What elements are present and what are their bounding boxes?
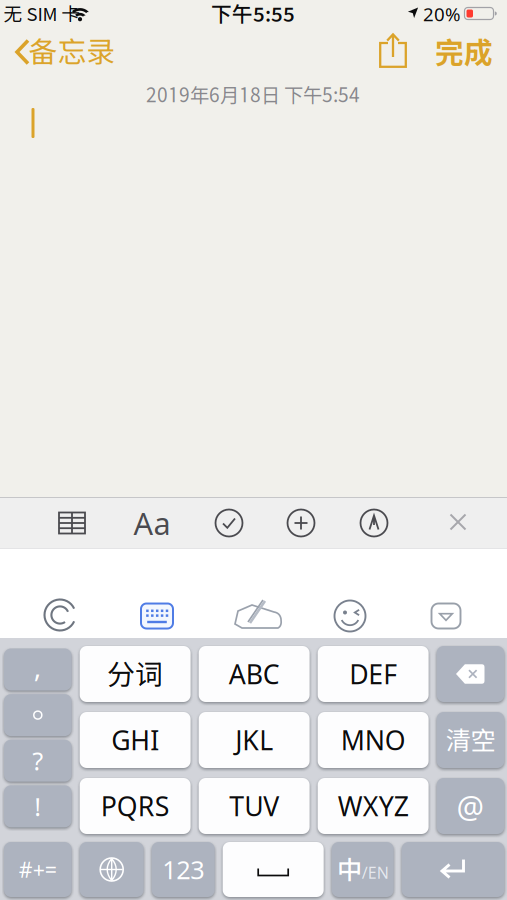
- button[interactable]: GHI: [80, 712, 191, 768]
- staticText: ,: [34, 648, 42, 685]
- button[interactable]: JKL: [199, 712, 310, 768]
- staticText: #+=: [19, 855, 57, 884]
- button[interactable]: 123: [152, 842, 215, 897]
- button[interactable]: 共享: [378, 33, 408, 69]
- button[interactable]: TUV: [199, 778, 310, 834]
- staticText: 123: [162, 853, 204, 886]
- button[interactable]: 表格: [58, 511, 86, 535]
- staticText: @: [456, 786, 484, 826]
- staticText: 20%: [423, 2, 461, 26]
- staticText: JKL: [235, 722, 273, 758]
- button[interactable]: 输入法菜单: [43, 598, 77, 632]
- button[interactable]: 键盘: [140, 602, 174, 629]
- staticText: WXYZ: [338, 788, 409, 824]
- button[interactable]: MNO: [318, 712, 429, 768]
- staticText: 分词: [107, 657, 163, 690]
- staticText: PQRS: [101, 788, 170, 824]
- staticText: ABC: [229, 656, 280, 692]
- button[interactable]: #+=: [4, 842, 72, 897]
- button[interactable]: PQRS: [80, 778, 191, 834]
- button[interactable]: 表情: [334, 600, 366, 632]
- staticText: MNO: [341, 722, 406, 758]
- button[interactable]: 添加: [287, 509, 315, 537]
- staticText: 清空: [445, 725, 495, 755]
- staticText: TUV: [229, 788, 279, 824]
- button[interactable]: ，: [4, 648, 72, 690]
- button[interactable]: 下一个键盘: [80, 842, 144, 897]
- button[interactable]: DEF: [318, 646, 429, 702]
- button[interactable]: 空格: [223, 842, 324, 897]
- staticText: GHI: [111, 722, 159, 758]
- staticText: DEF: [349, 656, 397, 692]
- button[interactable]: ？: [4, 740, 72, 782]
- button[interactable]: 删除: [437, 646, 504, 702]
- button[interactable]: WXYZ: [318, 778, 429, 834]
- staticText: 2019年6月18日 下午5:54: [146, 84, 360, 106]
- button[interactable]: 备忘录: [14, 39, 108, 65]
- staticText: 备忘录: [28, 35, 115, 68]
- button[interactable]: ABC: [199, 646, 310, 702]
- button[interactable]: ！: [4, 785, 72, 827]
- staticText: 完成: [435, 35, 493, 69]
- staticText: Aa: [133, 503, 170, 543]
- button[interactable]: 中/EN: [332, 842, 394, 897]
- staticText: 下午5:55: [211, 2, 295, 26]
- button[interactable]: 核对清单: [215, 509, 243, 537]
- button[interactable]: 格式: [133, 503, 170, 543]
- staticText: !: [34, 789, 41, 823]
- staticText: 无 SIM 卡: [3, 3, 80, 25]
- staticText: ?: [32, 744, 43, 777]
- button[interactable]: 换行: [402, 842, 504, 897]
- button[interactable]: 手写: [232, 598, 284, 632]
- button[interactable]: 标记: [360, 509, 388, 537]
- button[interactable]: 收起键盘: [431, 603, 461, 629]
- staticText: 中: [337, 855, 362, 884]
- button[interactable]: 完成: [435, 35, 493, 69]
- button[interactable]: 关闭: [448, 512, 467, 531]
- button[interactable]: 。: [4, 694, 72, 736]
- button[interactable]: 清空: [437, 712, 504, 768]
- button[interactable]: @: [437, 778, 504, 834]
- staticText: /EN: [362, 862, 389, 883]
- button[interactable]: 分词: [80, 646, 191, 702]
